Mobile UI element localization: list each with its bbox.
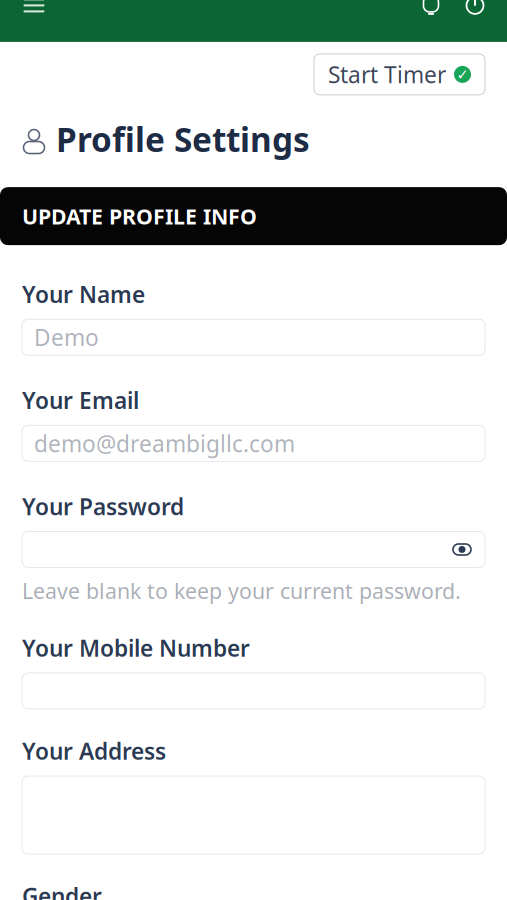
button[interactable]: Menu [10, 0, 58, 29]
staticText: Your Name [22, 279, 145, 309]
staticText: UPDATE PROFILE INFO [22, 202, 257, 230]
button[interactable]: Start Timer [314, 54, 485, 95]
button[interactable]: Notifications [409, 0, 453, 27]
staticText: Gender [22, 881, 102, 900]
staticText: demo@dreambigllc.com [34, 428, 295, 458]
staticText: Your Email [22, 385, 139, 415]
staticText: Your Mobile Number [22, 633, 250, 663]
staticText: Your Password [22, 491, 184, 521]
staticText: Your Address [22, 736, 166, 766]
staticText: ✓ [456, 66, 468, 83]
staticText: Demo [34, 322, 99, 352]
button[interactable]: Log out [453, 0, 497, 27]
staticText: Leave blank to keep your current passwor… [22, 576, 461, 605]
button[interactable]: Show password [447, 534, 477, 564]
staticText: Profile Settings [56, 117, 310, 161]
staticText: Start Timer [328, 59, 446, 89]
